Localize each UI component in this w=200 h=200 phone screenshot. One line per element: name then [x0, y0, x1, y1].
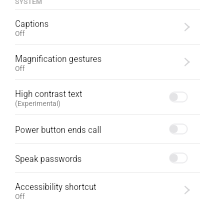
staticText: Power button ends call [15, 125, 102, 135]
staticText: Off [15, 65, 25, 73]
button[interactable]: Magnification gestures [0, 45, 200, 79]
other: Open [179, 19, 195, 35]
staticText: High contrast text [15, 89, 83, 99]
other: Toggle [169, 121, 188, 137]
staticText: Speak passwords [15, 154, 82, 164]
staticText: Accessibility shortcut [15, 182, 97, 192]
button[interactable]: Power button ends call [0, 115, 200, 143]
other: Open [179, 182, 195, 198]
button[interactable]: Speak passwords [0, 144, 200, 172]
staticText: Off [15, 193, 25, 200]
staticText: Captions [15, 19, 49, 29]
other: Toggle [169, 89, 188, 105]
button[interactable]: High contrast text [0, 80, 200, 114]
staticText: SYSTEM [15, 0, 43, 6]
staticText: (Experimental) [15, 100, 61, 108]
other: Toggle [169, 150, 188, 166]
other: Open [179, 54, 195, 70]
staticText: Off [15, 30, 25, 38]
staticText: Magnification gestures [15, 54, 102, 64]
button[interactable]: Accessibility shortcut [0, 173, 200, 200]
button[interactable]: Captions [0, 10, 200, 44]
